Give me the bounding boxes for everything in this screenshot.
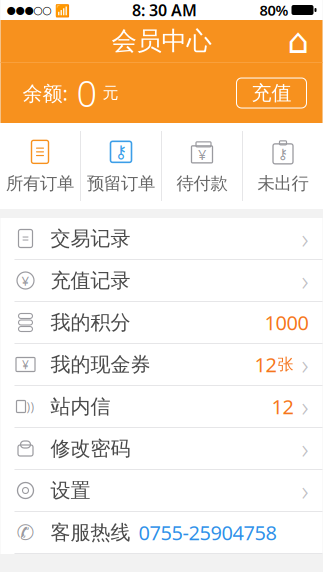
staticText: 余额: [22,80,67,106]
staticText: 📶 [51,2,69,18]
button[interactable]: 修改密码 [0,428,322,470]
staticText: 设置 [50,478,90,503]
button[interactable]: ✆ [0,512,322,554]
staticText: 12 [271,393,293,420]
staticText: 充值记录 [50,268,130,293]
button[interactable]: 设置 [0,470,322,512]
staticText: › [301,221,308,256]
staticText: › [301,473,308,508]
staticText: ¥ [21,272,29,289]
staticText: 张 [277,355,293,374]
staticText: 待付款 [176,173,227,194]
staticText: 站内信 [50,394,110,419]
staticText: 客服热线 [50,520,130,545]
staticText: › [301,389,308,424]
staticText: 1000 [264,309,308,336]
button[interactable]: 交易记录 [0,218,322,260]
button[interactable]: ⚷ [243,123,323,209]
button[interactable]: )) [0,386,322,428]
staticText: 元 [97,83,118,103]
button[interactable]: Home [278,21,318,61]
staticText: 0755-25904758 [138,519,276,546]
staticText: 0 [67,69,97,117]
staticText: ✆ [16,520,34,545]
staticText: 8: 30 AM [132,0,197,21]
staticText: 我的积分 [50,310,130,335]
staticText: ¥ [22,356,29,372]
staticText: 充值 [251,81,291,105]
staticText: ⌂ [287,21,309,61]
staticText: 预留订单 [87,173,155,194]
staticText: 12 [254,351,276,378]
staticText: 修改密码 [50,436,130,461]
staticText: 未出行 [257,173,308,194]
button[interactable]: 我的积分 [0,302,322,344]
staticText: 80% [259,0,288,20]
staticText: 我的现金券 [50,352,150,377]
staticText: ¥ [198,145,206,164]
button[interactable]: 所有订单 [0,123,80,209]
button[interactable]: ¥ [162,123,242,209]
button[interactable]: ¥ [0,344,322,386]
button[interactable]: ⚷ [81,123,161,209]
button[interactable]: 充值 [236,78,306,108]
staticText: › [301,431,308,466]
staticText: › [301,347,308,382]
staticText: 交易记录 [50,226,130,251]
staticText: ⚷ [114,142,127,162]
staticText: 所有订单 [6,173,74,194]
staticText: 会员中心 [111,25,211,56]
staticText: ●●●○○ [6,4,51,16]
button[interactable]: ¥ [0,260,322,302]
staticText: ⚷ [277,145,288,162]
staticText: )) [26,398,34,414]
staticText: › [301,263,308,298]
